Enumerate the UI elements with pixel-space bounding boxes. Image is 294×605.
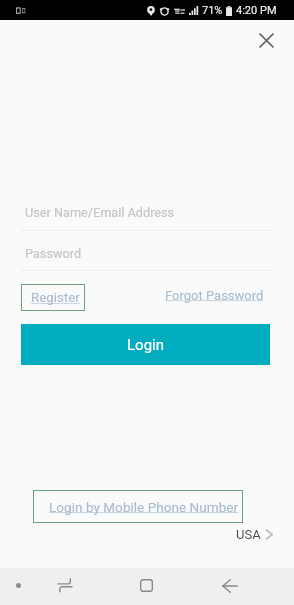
button[interactable]: Switch apps <box>53 568 77 605</box>
staticText: Register <box>31 290 80 306</box>
button[interactable]: Home <box>134 568 158 605</box>
staticText: Login by Mobile Phone Number <box>49 499 239 515</box>
staticText: Forgot Password <box>165 288 264 303</box>
button[interactable]: Register <box>21 284 85 311</box>
button[interactable]: Close <box>252 26 280 54</box>
button[interactable]: Login <box>21 324 270 365</box>
button[interactable]: USA <box>236 527 272 542</box>
staticText: Password <box>25 246 82 261</box>
staticText: User Name/Email Address <box>25 205 175 220</box>
button[interactable]: Menu <box>0 568 37 605</box>
staticText: 4:20 PM <box>236 4 277 17</box>
button[interactable]: Back <box>218 568 242 605</box>
staticText: USA <box>236 527 261 542</box>
button[interactable]: Login by Mobile Phone Number <box>33 490 243 523</box>
staticText: 71% <box>202 4 223 17</box>
button[interactable]: Forgot Password <box>165 288 264 303</box>
staticText: Login <box>127 336 164 354</box>
